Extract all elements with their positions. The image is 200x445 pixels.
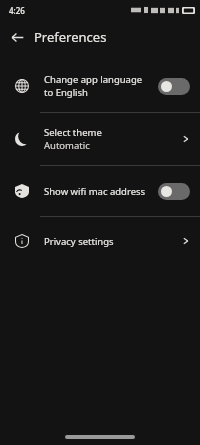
staticText: 4:26	[9, 5, 25, 16]
staticText: Privacy settings	[44, 235, 114, 248]
button[interactable]: Show wifi mac address	[0, 166, 200, 216]
staticText: Automatic	[44, 139, 90, 152]
button[interactable]: Back	[6, 26, 28, 48]
button[interactable]: Change app language	[0, 60, 200, 112]
button[interactable]: Privacy settings	[0, 217, 200, 265]
staticText: to English	[44, 86, 88, 99]
staticText: Select theme	[44, 126, 102, 139]
button[interactable]: Select theme	[0, 113, 200, 165]
staticText: Change app language	[44, 73, 143, 86]
staticText: Preferences	[34, 28, 107, 46]
button[interactable]: Toggle	[158, 78, 190, 95]
staticText: Show wifi mac address	[44, 185, 146, 198]
button[interactable]: Toggle	[158, 183, 190, 200]
